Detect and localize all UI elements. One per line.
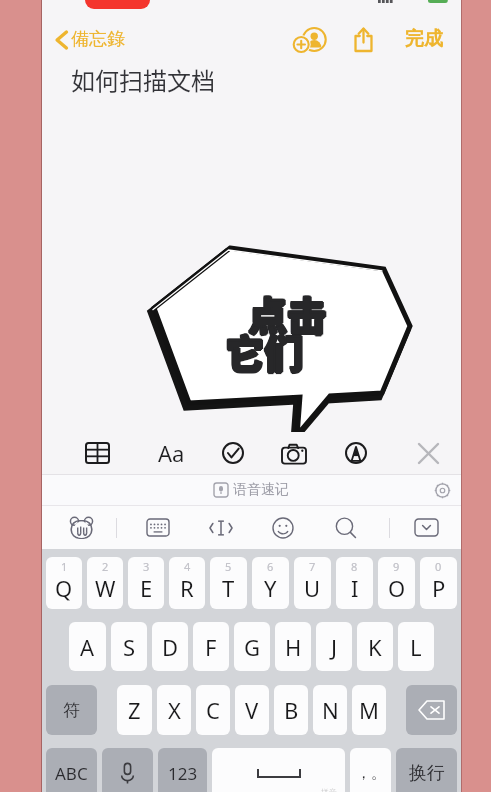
- button[interactable]: 6: [252, 557, 289, 609]
- button[interactable]: Z: [117, 685, 152, 735]
- staticText: Y: [264, 573, 277, 603]
- button[interactable]: 4: [169, 557, 205, 609]
- button[interactable]: Space: [212, 748, 345, 792]
- button[interactable]: Markup: [345, 436, 379, 470]
- button[interactable]: Baidu input: [41, 506, 116, 549]
- staticText: 点击: [250, 285, 329, 341]
- staticText: 6: [267, 559, 274, 574]
- button[interactable]: Move cursor: [185, 506, 253, 549]
- staticText: 它们: [225, 322, 304, 378]
- staticText: 语音速记: [233, 481, 289, 499]
- staticText: V: [245, 695, 259, 725]
- button[interactable]: Close: [411, 436, 445, 470]
- staticText: M: [359, 695, 379, 725]
- button[interactable]: M: [352, 685, 386, 735]
- staticText: 它们: [224, 322, 303, 378]
- button[interactable]: Share: [348, 22, 379, 57]
- button[interactable]: G: [234, 622, 270, 671]
- staticText: 它们: [225, 324, 304, 380]
- staticText: 它们: [226, 322, 305, 378]
- button[interactable]: C: [196, 685, 230, 735]
- staticText: P: [432, 573, 446, 603]
- button[interactable]: L: [398, 622, 434, 671]
- staticText: T: [222, 573, 235, 603]
- button[interactable]: 9: [378, 557, 415, 609]
- button[interactable]: 1: [46, 557, 82, 609]
- staticText: U: [304, 573, 321, 603]
- staticText: 8: [351, 559, 358, 574]
- button[interactable]: X: [157, 685, 191, 735]
- button[interactable]: V: [235, 685, 269, 735]
- button[interactable]: Keyboard layout: [117, 506, 185, 549]
- button[interactable]: Voice input: [102, 748, 153, 792]
- button[interactable]: D: [152, 622, 188, 671]
- button[interactable]: 123: [158, 748, 207, 792]
- staticText: B: [284, 695, 299, 725]
- button[interactable]: K: [357, 622, 393, 671]
- staticText: Aa: [158, 438, 185, 468]
- staticText: X: [168, 695, 181, 725]
- staticText: J: [331, 632, 338, 662]
- staticText: L: [410, 632, 422, 662]
- staticText: 点击: [248, 284, 327, 340]
- button[interactable]: Hide keyboard: [390, 506, 462, 549]
- button[interactable]: Aa: [146, 436, 180, 470]
- staticText: H: [285, 632, 302, 662]
- button[interactable]: 0: [420, 557, 457, 609]
- staticText: 7: [309, 559, 316, 574]
- staticText: 它们: [227, 323, 306, 379]
- button[interactable]: 换行: [396, 748, 457, 792]
- staticText: 点击: [248, 287, 327, 343]
- staticText: 符: [63, 700, 80, 721]
- button[interactable]: ABC: [46, 748, 97, 792]
- staticText: Q: [55, 573, 73, 603]
- button[interactable]: F: [193, 622, 229, 671]
- staticText: 它们: [224, 324, 303, 380]
- staticText: N: [322, 695, 339, 725]
- button[interactable]: B: [274, 685, 308, 735]
- staticText: 0: [435, 559, 442, 574]
- button[interactable]: Backspace: [406, 685, 457, 735]
- staticText: 9: [393, 559, 400, 574]
- button[interactable]: N: [313, 685, 347, 735]
- button[interactable]: Emoji: [253, 506, 321, 549]
- button[interactable]: 2: [87, 557, 123, 609]
- button[interactable]: J: [316, 622, 352, 671]
- button[interactable]: Checklist: [212, 436, 246, 470]
- staticText: 1: [61, 559, 68, 574]
- button[interactable]: Table: [80, 436, 114, 470]
- button[interactable]: S: [111, 622, 147, 671]
- staticText: 5: [225, 559, 232, 574]
- button[interactable]: Search: [321, 506, 389, 549]
- button[interactable]: 8: [336, 557, 373, 609]
- staticText: 点击: [249, 284, 328, 340]
- staticText: G: [244, 632, 261, 662]
- staticText: K: [368, 632, 382, 662]
- staticText: 3: [143, 559, 150, 574]
- staticText: E: [140, 573, 153, 603]
- button[interactable]: 備忘錄: [51, 23, 129, 56]
- button[interactable]: Settings: [435, 483, 450, 498]
- button[interactable]: 3: [128, 557, 164, 609]
- staticText: O: [388, 573, 406, 603]
- staticText: 点击: [248, 286, 327, 342]
- staticText: 123: [168, 762, 198, 785]
- button[interactable]: H: [275, 622, 311, 671]
- button[interactable]: ，。: [350, 748, 391, 792]
- button[interactable]: Camera: [279, 436, 313, 470]
- button[interactable]: 完成: [401, 22, 447, 56]
- button[interactable]: A: [69, 622, 106, 671]
- staticText: 它们: [225, 325, 304, 381]
- button[interactable]: 7: [294, 557, 331, 609]
- button[interactable]: 符: [46, 685, 97, 735]
- staticText: S: [123, 632, 136, 662]
- staticText: 備忘錄: [71, 28, 125, 51]
- staticText: 点击: [248, 285, 327, 341]
- staticText: ，。: [356, 764, 386, 783]
- staticText: 点击: [249, 286, 328, 342]
- staticText: 点击: [247, 285, 326, 341]
- staticText: 点击: [249, 285, 328, 341]
- button[interactable]: 5: [210, 557, 247, 609]
- button[interactable]: Add people: [290, 22, 331, 57]
- staticText: D: [162, 632, 179, 662]
